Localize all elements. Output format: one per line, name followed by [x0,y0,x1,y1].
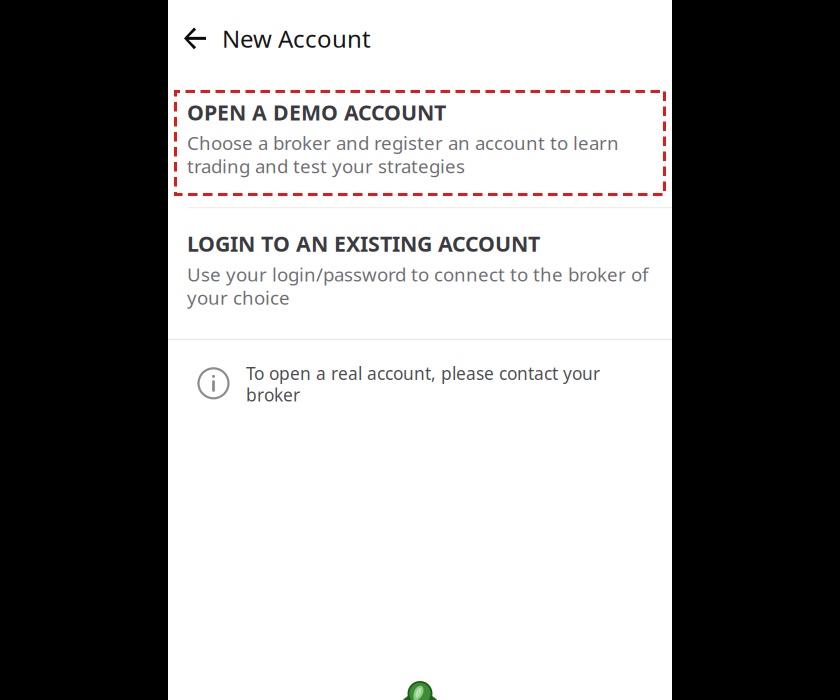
staticText: Use your login/password to connect to th… [187,262,648,310]
staticText: To open a real account, please contact y… [246,362,600,406]
button[interactable]: OPEN A DEMO ACCOUNT [168,77,672,207]
button[interactable]: New Account [214,0,371,77]
staticText: New Account [222,23,371,54]
button[interactable]: Back [168,0,214,77]
staticText: OPEN A DEMO ACCOUNT [187,98,446,126]
button[interactable]: LOGIN TO AN EXISTING ACCOUNT [168,208,672,339]
staticText: LOGIN TO AN EXISTING ACCOUNT [187,229,540,258]
staticText: Choose a broker and register an account … [187,130,619,178]
